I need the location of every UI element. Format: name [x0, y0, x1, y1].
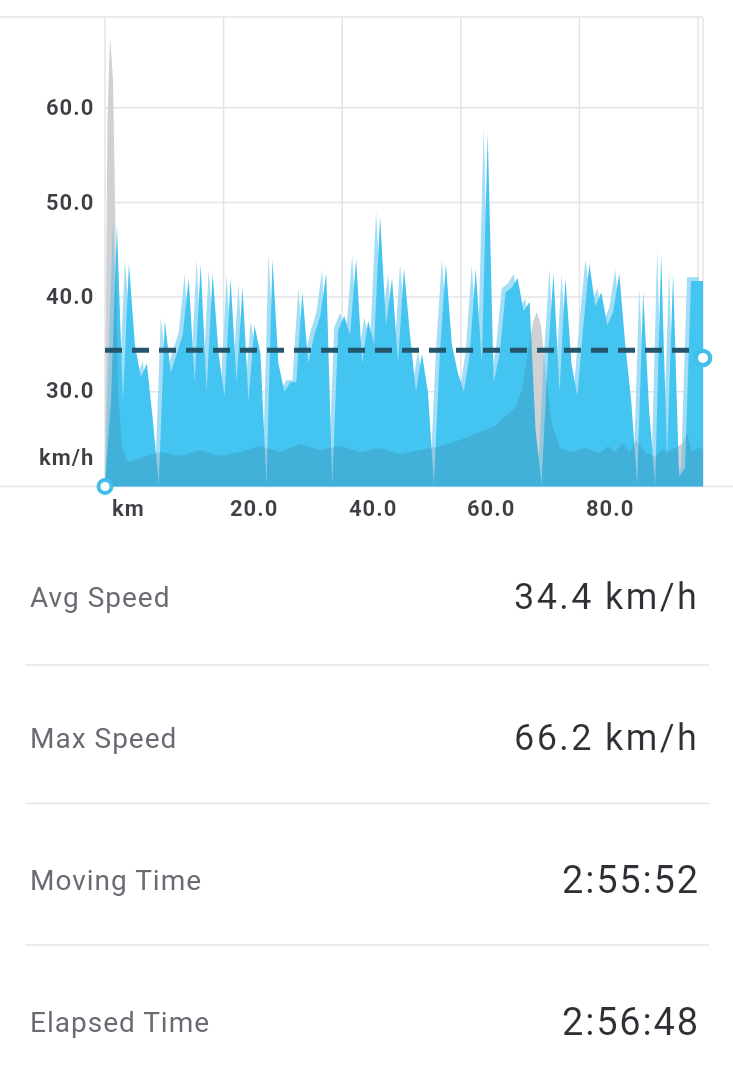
staticText: 30.0 — [46, 378, 95, 404]
staticText: Elapsed Time — [30, 1006, 211, 1039]
staticText: 50.0 — [46, 190, 95, 216]
staticText: 2:56:48 — [562, 1000, 700, 1045]
staticText: 34.4 km/h — [514, 576, 700, 618]
staticText: 2:55:52 — [562, 858, 700, 903]
button[interactable]: Elapsed Time — [0, 967, 733, 1077]
staticText: km — [112, 496, 145, 522]
staticText: km/h — [39, 445, 95, 471]
staticText: Avg Speed — [30, 581, 171, 614]
staticText: 40.0 — [349, 496, 398, 522]
button[interactable]: Avg Speed — [0, 542, 733, 652]
staticText: 66.2 km/h — [514, 717, 700, 759]
button[interactable]: Moving Time — [0, 825, 733, 935]
staticText: 20.0 — [230, 496, 279, 522]
staticText: 40.0 — [46, 284, 95, 310]
staticText: 60.0 — [46, 95, 95, 121]
button[interactable]: Max Speed — [0, 683, 733, 793]
staticText: 60.0 — [467, 496, 516, 522]
staticText: Moving Time — [30, 864, 203, 897]
staticText: 80.0 — [586, 496, 635, 522]
staticText: Max Speed — [30, 722, 178, 755]
